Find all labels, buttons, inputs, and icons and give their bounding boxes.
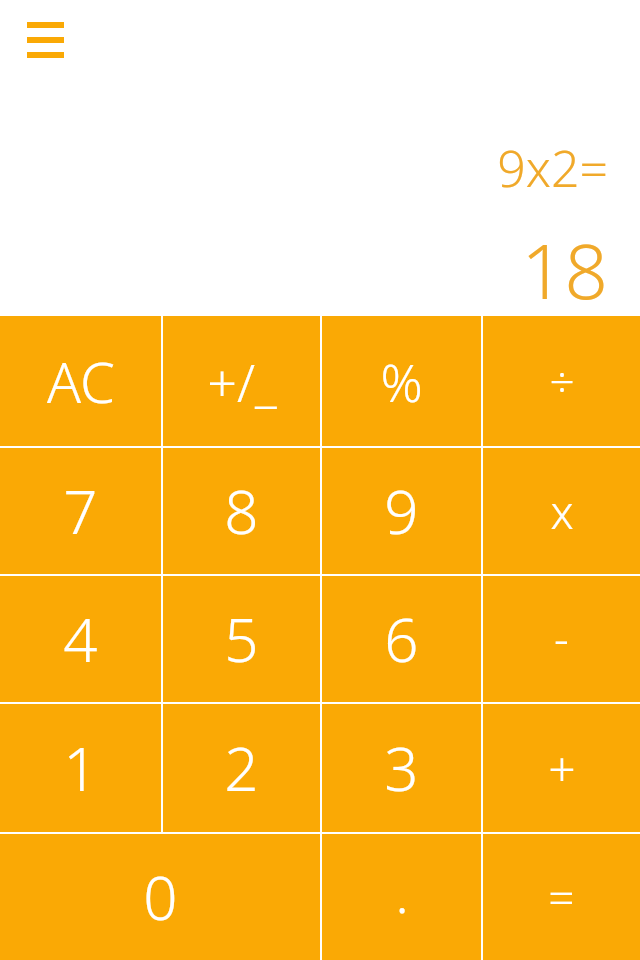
button[interactable]: 5 bbox=[163, 576, 320, 702]
button[interactable]: 1 bbox=[0, 704, 161, 832]
button[interactable]: . bbox=[322, 834, 481, 960]
button[interactable]: 4 bbox=[0, 576, 161, 702]
button[interactable]: 9 bbox=[322, 448, 481, 574]
staticText: AC bbox=[47, 343, 115, 419]
staticText: +/_ bbox=[207, 346, 277, 417]
staticText: 3 bbox=[384, 727, 419, 809]
staticText: % bbox=[380, 346, 423, 417]
button[interactable]: 3 bbox=[322, 704, 481, 832]
staticText: . bbox=[395, 853, 409, 929]
staticText: 9x2= bbox=[497, 134, 608, 202]
button[interactable]: AC bbox=[0, 316, 161, 446]
staticText: - bbox=[554, 606, 569, 669]
button[interactable]: +/_ bbox=[163, 316, 320, 446]
button[interactable]: ÷ bbox=[483, 316, 640, 446]
button[interactable]: 8 bbox=[163, 448, 320, 574]
staticText: 7 bbox=[63, 470, 98, 552]
button[interactable]: 2 bbox=[163, 704, 320, 832]
staticText: ÷ bbox=[549, 351, 575, 411]
staticText: 1 bbox=[63, 727, 98, 809]
staticText: 6 bbox=[384, 598, 419, 680]
staticText: 8 bbox=[224, 470, 259, 552]
button[interactable]: % bbox=[322, 316, 481, 446]
button[interactable]: 0 bbox=[0, 834, 320, 960]
button[interactable]: + bbox=[483, 704, 640, 832]
staticText: = bbox=[548, 866, 575, 929]
button[interactable]: 7 bbox=[0, 448, 161, 574]
staticText: + bbox=[548, 736, 576, 801]
button[interactable]: = bbox=[483, 834, 640, 960]
button[interactable]: Menu bbox=[18, 12, 74, 66]
staticText: 5 bbox=[224, 598, 259, 680]
staticText: x bbox=[550, 480, 574, 543]
staticText: 9 bbox=[384, 470, 419, 552]
button[interactable]: - bbox=[483, 576, 640, 702]
button[interactable]: x bbox=[483, 448, 640, 574]
staticText: 2 bbox=[224, 727, 259, 809]
staticText: 0 bbox=[143, 856, 178, 938]
staticText: 4 bbox=[63, 598, 98, 680]
staticText: 18 bbox=[521, 218, 608, 316]
button[interactable]: 6 bbox=[322, 576, 481, 702]
